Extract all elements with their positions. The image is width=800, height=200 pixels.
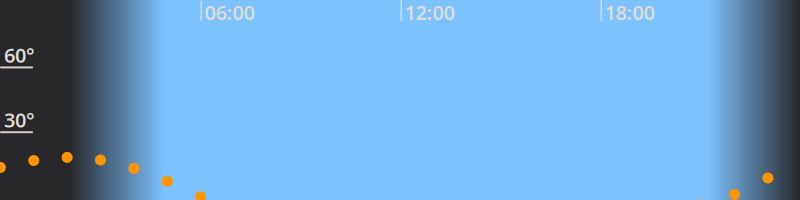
staticText: 06:00 — [204, 0, 254, 26]
staticText: 30° — [4, 106, 35, 133]
staticText: 18:00 — [604, 0, 654, 26]
staticText: 12:00 — [404, 0, 454, 26]
staticText: 60° — [4, 42, 35, 68]
button[interactable]: Hourly temperature forecast chart — [0, 0, 800, 200]
